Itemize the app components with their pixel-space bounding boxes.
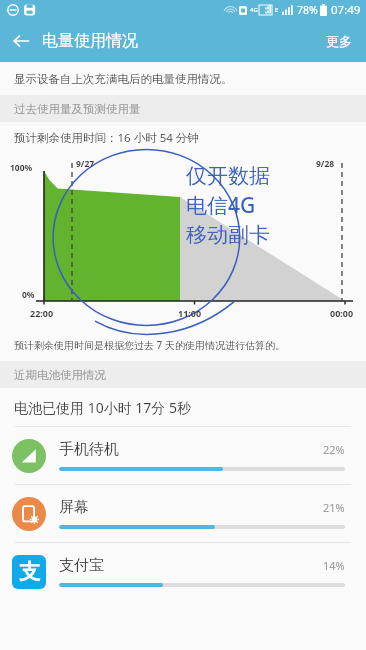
staticText: 移动副卡 [186,222,270,248]
staticText: 22:00 [30,307,54,319]
button[interactable]: 支 [0,542,366,600]
staticText: 00:00 [330,307,354,319]
staticText: 电量使用情况 [42,31,138,51]
staticText: 78% [297,3,318,17]
staticText: 支付宝 [59,556,323,575]
button[interactable]: 更多 [312,23,366,59]
staticText: 手机待机 [59,440,323,459]
staticText: 14% [323,558,345,573]
staticText: 11:00 [178,307,202,319]
staticText: 9/28 [316,158,335,170]
staticText: 4G [250,6,258,14]
button[interactable]: 手机待机 [0,426,366,484]
staticText: E [275,6,279,14]
staticText: 预计剩余使用时间是根据您过去 7 天的使用情况进行估算的。 [14,338,285,352]
button[interactable]: 屏幕 [0,484,366,542]
staticText: 9/27 [76,158,95,170]
staticText: 屏幕 [59,498,323,517]
staticText: 仅开数据 [186,163,270,189]
staticText: 更多 [326,33,352,49]
staticText: 21% [323,500,345,515]
staticText: 预计剩余使用时间：16 小时 54 分钟 [14,130,199,146]
staticText: 电池已使用 10小时 17分 5秒 [14,398,191,417]
staticText: 100% [10,162,33,174]
staticText: 0% [22,289,35,301]
staticText: 显示设备自上次充满电后的电量使用情况。 [14,72,233,86]
staticText: 电信4G [186,191,256,220]
staticText: 22% [323,442,345,457]
staticText: 支 [19,559,40,585]
button[interactable]: 返回 [0,20,42,62]
staticText: 近期电池使用情况 [14,368,106,382]
staticText: 过去使用量及预测使用量 [14,102,141,116]
staticText: 07:49 [331,2,361,18]
